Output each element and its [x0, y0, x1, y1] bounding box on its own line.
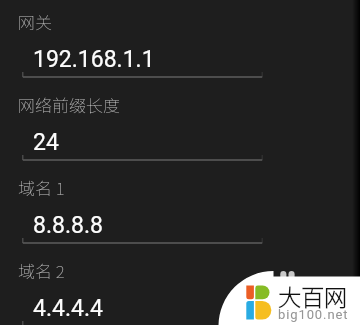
button[interactable]: 域名 1	[18, 163, 264, 243]
staticText: 大百网	[278, 279, 347, 312]
staticText: 24	[33, 129, 59, 156]
staticText: big100.net	[278, 307, 349, 322]
staticText: 域名 1	[18, 175, 65, 200]
staticText: 网关	[18, 9, 52, 34]
staticText: 192.168.1.1	[33, 46, 155, 73]
staticText: 4.4.4.4	[33, 295, 103, 322]
button[interactable]: 网络前缀长度	[18, 80, 264, 160]
button[interactable]: 域名 2	[18, 246, 264, 325]
button[interactable]: 网关	[18, 0, 264, 77]
staticText: 域名 2	[18, 258, 65, 283]
staticText: 网络前缀长度	[18, 92, 120, 117]
staticText: 8.8.8.8	[33, 212, 103, 239]
other: big100.net logo	[0, 0, 360, 325]
